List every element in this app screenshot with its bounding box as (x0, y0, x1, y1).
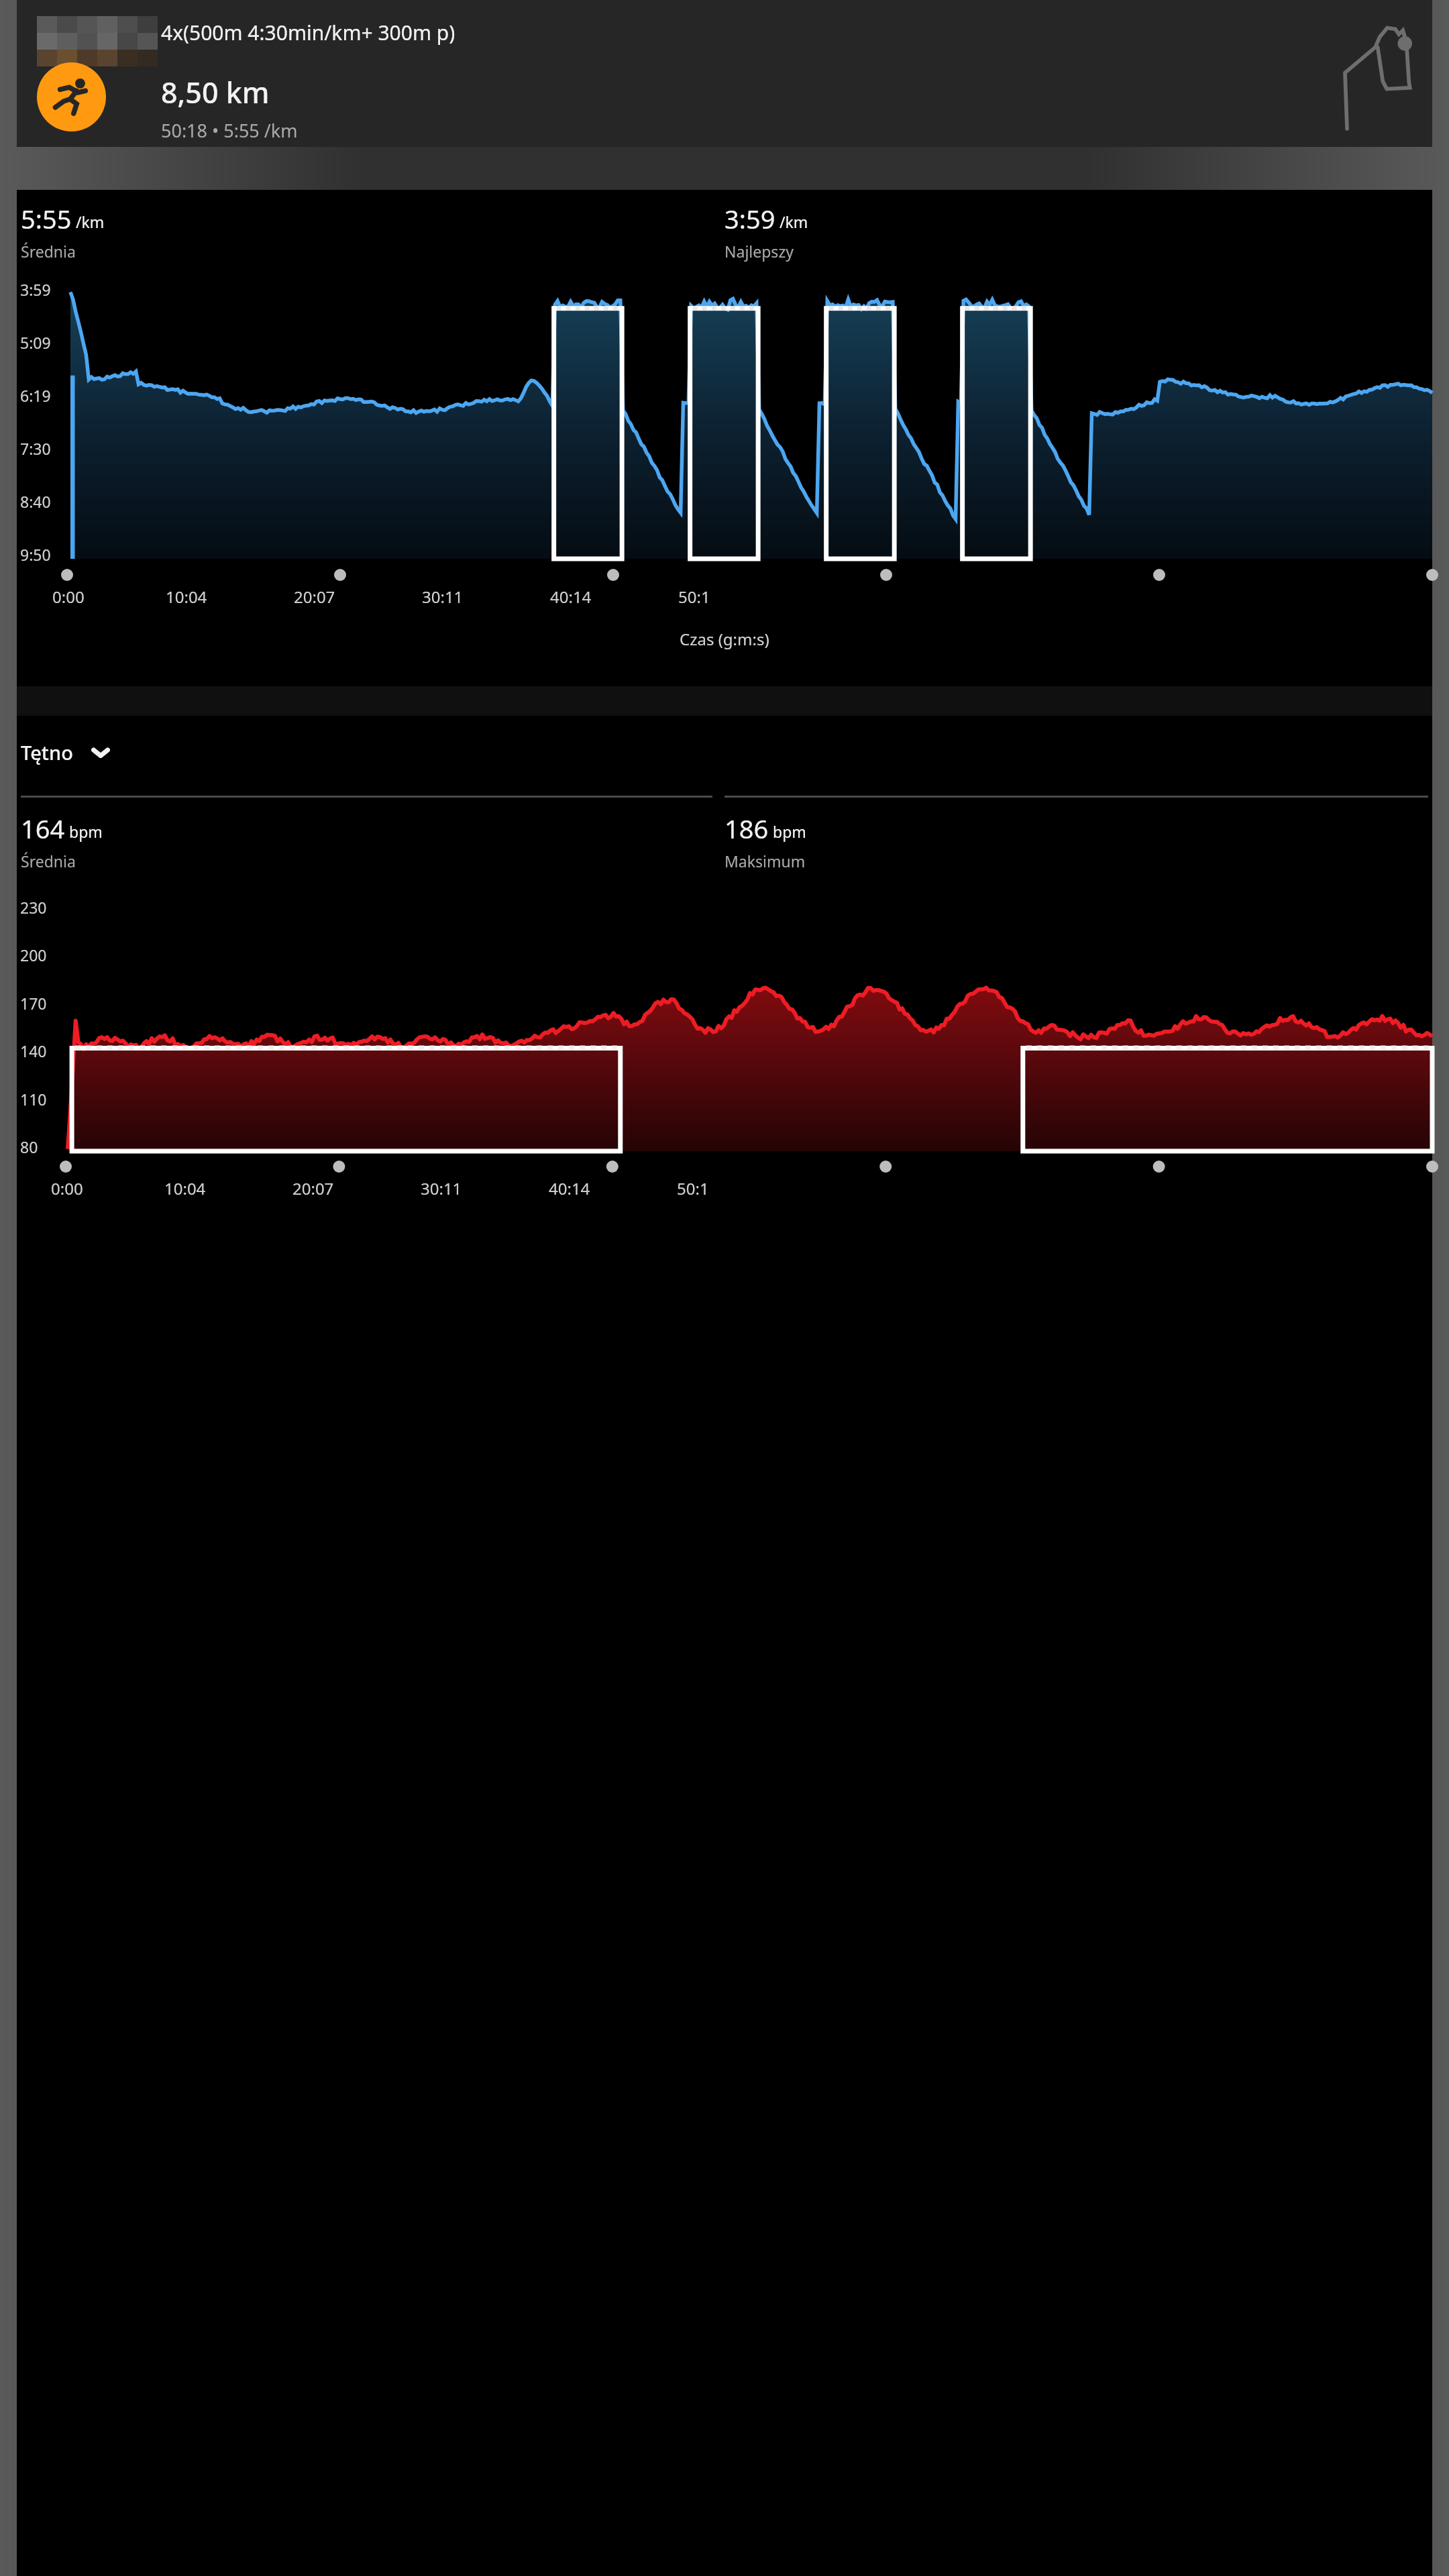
staticText: 30:11 (422, 586, 464, 608)
staticText: 6:19 (20, 385, 51, 406)
staticText: bpm (773, 821, 806, 842)
staticText: Maksimum (724, 851, 806, 871)
staticText: 50:1 (677, 1177, 709, 1199)
staticText: 186 (724, 811, 769, 846)
staticText: 30:11 (421, 1177, 462, 1199)
other: Running activity (37, 62, 106, 131)
staticText: bpm (69, 821, 103, 842)
staticText: 140 (20, 1040, 47, 1061)
button[interactable]: 5:55 (17, 190, 1432, 686)
staticText: 7:30 (20, 438, 51, 459)
staticText: Najlepszy (724, 241, 794, 262)
staticText: 9:50 (20, 544, 51, 565)
button[interactable]: Tętno (21, 739, 111, 765)
staticText: 3:59 (724, 201, 775, 236)
staticText: 40:14 (550, 586, 592, 608)
staticText: 5:09 (20, 332, 51, 353)
staticText: 8:40 (20, 491, 51, 512)
staticText: 200 (20, 945, 47, 965)
staticText: 10:04 (166, 586, 207, 608)
staticText: 110 (20, 1089, 47, 1110)
staticText: /km (76, 211, 105, 232)
staticText: 80 (20, 1136, 38, 1157)
staticText: 230 (20, 897, 47, 918)
staticText: 4x(500m 4:30min/km+ 300m p) (161, 19, 455, 46)
staticText: Średnia (21, 851, 76, 871)
staticText: 5:55 (21, 201, 72, 236)
other: Expand heart rate (91, 746, 111, 759)
staticText: 10:04 (164, 1177, 206, 1199)
staticText: 8,50 km (161, 72, 270, 112)
staticText: 20:07 (292, 1177, 334, 1199)
staticText: 0:00 (51, 1177, 83, 1199)
button[interactable]: Route map (17, 0, 1432, 147)
staticText: /km (780, 211, 808, 232)
staticText: 3:59 (20, 279, 51, 300)
staticText: 164 (21, 811, 65, 846)
staticText: 40:14 (549, 1177, 590, 1199)
staticText: Średnia (21, 241, 76, 262)
staticText: Tętno (21, 739, 73, 765)
staticText: 50:18 • 5:55 /km (161, 118, 298, 143)
staticText: 0:00 (52, 586, 85, 608)
staticText: Czas (g:m:s) (680, 628, 769, 650)
other: Route map (1325, 17, 1426, 147)
staticText: 170 (20, 993, 47, 1014)
staticText: 20:07 (294, 586, 335, 608)
staticText: 50:1 (678, 586, 710, 608)
button[interactable]: Tętno (17, 716, 1432, 2576)
